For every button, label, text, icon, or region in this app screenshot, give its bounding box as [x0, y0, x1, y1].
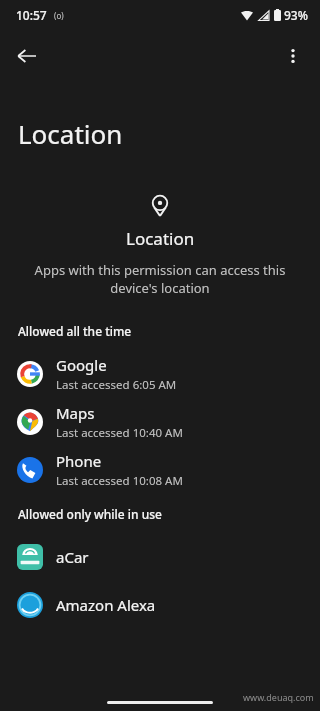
staticText: Last accessed 6:05 AM [56, 377, 177, 393]
staticText: Maps [56, 403, 95, 423]
staticText: Location [126, 227, 195, 250]
staticText: Location [18, 116, 320, 151]
staticText: www.deuaq.com [243, 691, 314, 703]
staticText: 93% [284, 7, 308, 23]
staticText: (o) [54, 10, 64, 21]
staticText: Google [56, 355, 107, 375]
staticText: Allowed all the time [18, 323, 320, 339]
staticText: Amazon Alexa [56, 595, 156, 615]
button[interactable]: Google [0, 350, 320, 398]
button[interactable]: Maps [0, 398, 320, 446]
staticText: Phone [56, 451, 102, 471]
staticText: 10:57 [16, 7, 47, 23]
staticText: Last accessed 10:40 AM [56, 425, 183, 441]
button[interactable]: More options [272, 35, 314, 77]
staticText: Last accessed 10:08 AM [56, 473, 183, 489]
staticText: Apps with this permission can access thi… [0, 261, 320, 297]
button[interactable]: Amazon Alexa [0, 581, 320, 629]
staticText: aCar [56, 547, 89, 567]
button[interactable]: Back [6, 35, 48, 77]
button[interactable]: Phone [0, 446, 320, 494]
staticText: Allowed only while in use [18, 506, 320, 522]
button[interactable]: aCar [0, 533, 320, 581]
